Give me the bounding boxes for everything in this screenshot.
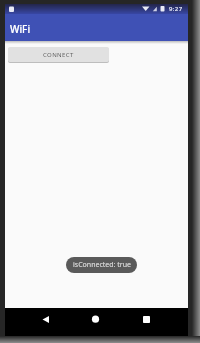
staticText: CONNECT xyxy=(43,51,74,59)
button[interactable] xyxy=(84,310,108,334)
staticText: WiFi xyxy=(10,22,31,36)
button[interactable] xyxy=(132,310,156,334)
staticText: 9:27 xyxy=(169,5,183,13)
button[interactable]: CONNECT xyxy=(8,47,109,62)
button[interactable] xyxy=(36,310,60,334)
staticText: isConnected: true xyxy=(73,260,131,270)
